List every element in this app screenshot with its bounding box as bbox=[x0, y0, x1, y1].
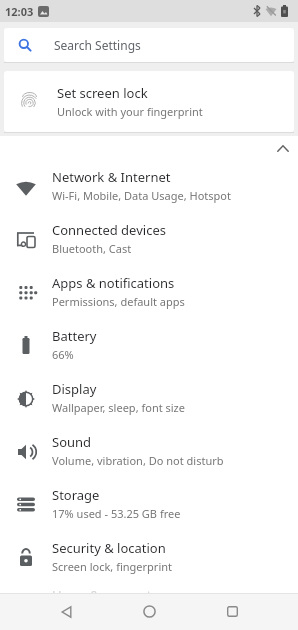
button[interactable]: Search Settings bbox=[4, 28, 294, 62]
button[interactable] bbox=[212, 593, 252, 630]
staticText: Set screen lock bbox=[57, 84, 148, 102]
button[interactable] bbox=[0, 136, 298, 159]
staticText: Display bbox=[52, 380, 97, 398]
staticText: Apps & notifications bbox=[52, 274, 175, 292]
button[interactable]: Security & location bbox=[0, 530, 298, 583]
button[interactable]: Battery bbox=[0, 318, 298, 371]
staticText: 12:03 bbox=[5, 4, 34, 19]
button[interactable]: Apps & notifications bbox=[0, 265, 298, 318]
button[interactable] bbox=[129, 593, 169, 630]
staticText: Sound bbox=[52, 433, 92, 451]
staticText: Search Settings bbox=[54, 37, 141, 53]
button[interactable]: Storage bbox=[0, 477, 298, 530]
button[interactable]: Connected devices bbox=[0, 212, 298, 265]
staticText: Battery bbox=[52, 327, 97, 345]
button[interactable]: Users & accounts bbox=[0, 583, 298, 630]
button[interactable]: Sound bbox=[0, 424, 298, 477]
staticText: Security & location bbox=[52, 539, 166, 557]
staticText: Unlock with your fingerprint bbox=[57, 104, 203, 119]
button[interactable]: Network & Internet bbox=[0, 159, 298, 212]
button[interactable] bbox=[46, 593, 86, 630]
staticText: Wallpaper, sleep, font size bbox=[52, 400, 185, 415]
staticText: 17% used - 53.25 GB free bbox=[52, 506, 181, 521]
button[interactable]: Display bbox=[0, 371, 298, 424]
staticText: Volume, vibration, Do not disturb bbox=[52, 453, 224, 468]
staticText: Users & accounts bbox=[52, 586, 158, 604]
staticText: Bluetooth, Cast bbox=[52, 241, 132, 256]
staticText: Storage bbox=[52, 486, 100, 504]
button[interactable]: Set screen lock bbox=[4, 71, 294, 132]
staticText: Wi-Fi, Mobile, Data Usage, Hotspot bbox=[52, 188, 231, 203]
staticText: Permissions, default apps bbox=[52, 294, 185, 309]
staticText: Screen lock, fingerprint bbox=[52, 559, 173, 574]
staticText: Network & Internet bbox=[52, 168, 171, 186]
staticText: 66% bbox=[52, 347, 74, 362]
staticText: Connected devices bbox=[52, 221, 166, 239]
